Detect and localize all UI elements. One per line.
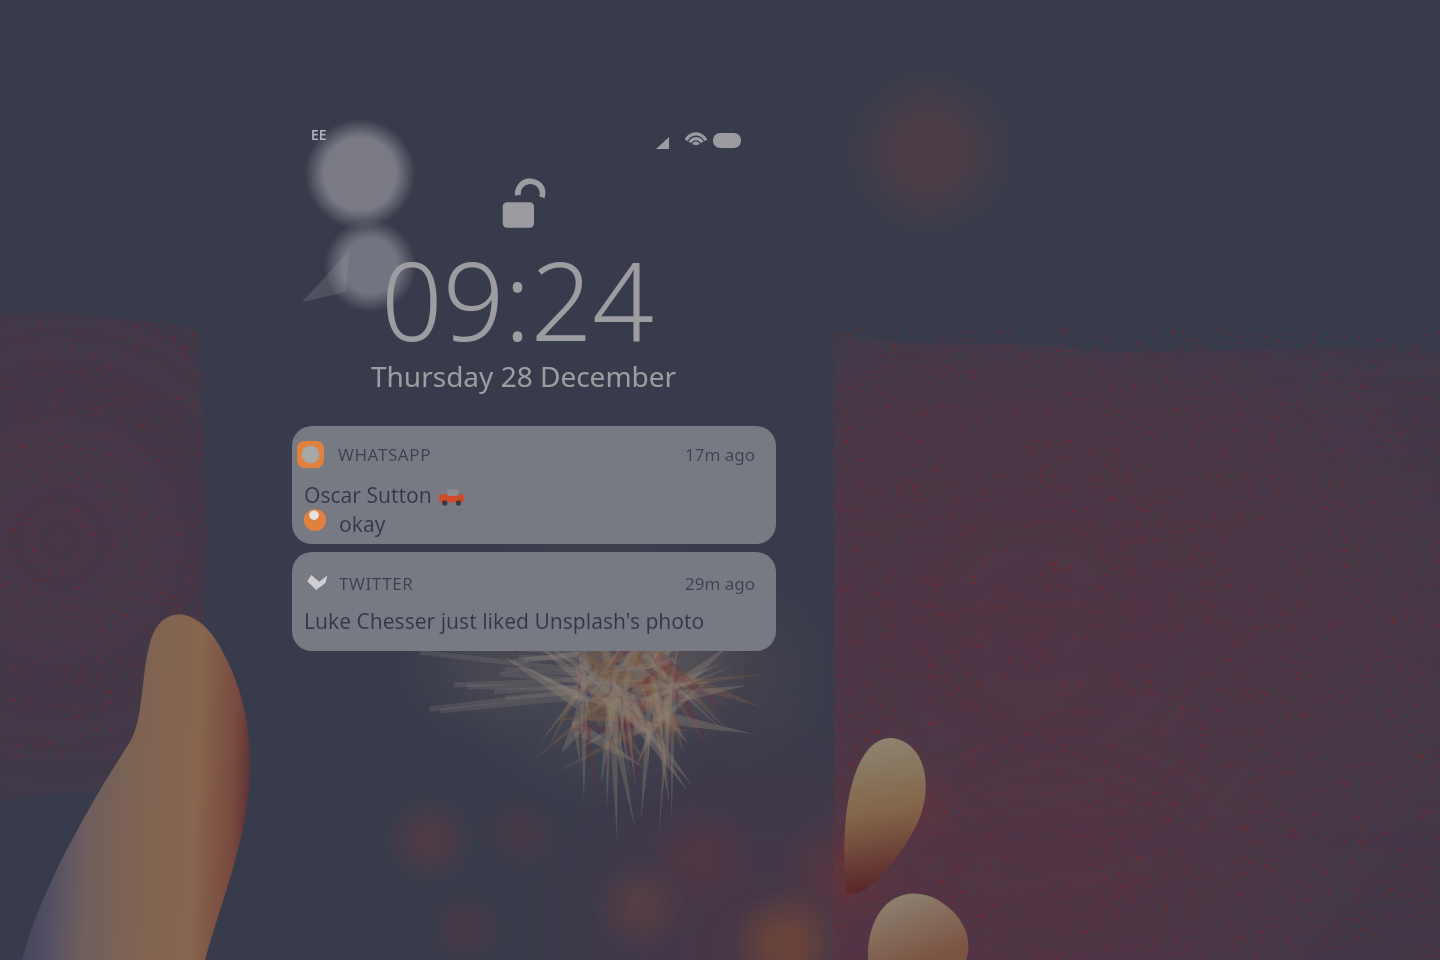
staticText: okay	[339, 510, 386, 539]
staticText: Thursday 28 December	[371, 357, 677, 395]
staticText: Oscar Sutton	[304, 481, 432, 510]
staticText: WHATSAPP	[338, 443, 432, 466]
staticText: 09:24	[381, 226, 655, 373]
staticText: Luke Chesser just liked Unsplash's photo	[304, 607, 705, 636]
button[interactable]: Unlock device	[500, 178, 554, 232]
staticText: 29m ago	[685, 572, 756, 595]
staticText: EE	[311, 125, 327, 144]
button[interactable]: WHATSAPP	[292, 426, 776, 544]
button[interactable]: TWITTER	[292, 552, 776, 651]
staticText: TWITTER	[339, 572, 414, 595]
staticText: 17m ago	[685, 443, 756, 466]
